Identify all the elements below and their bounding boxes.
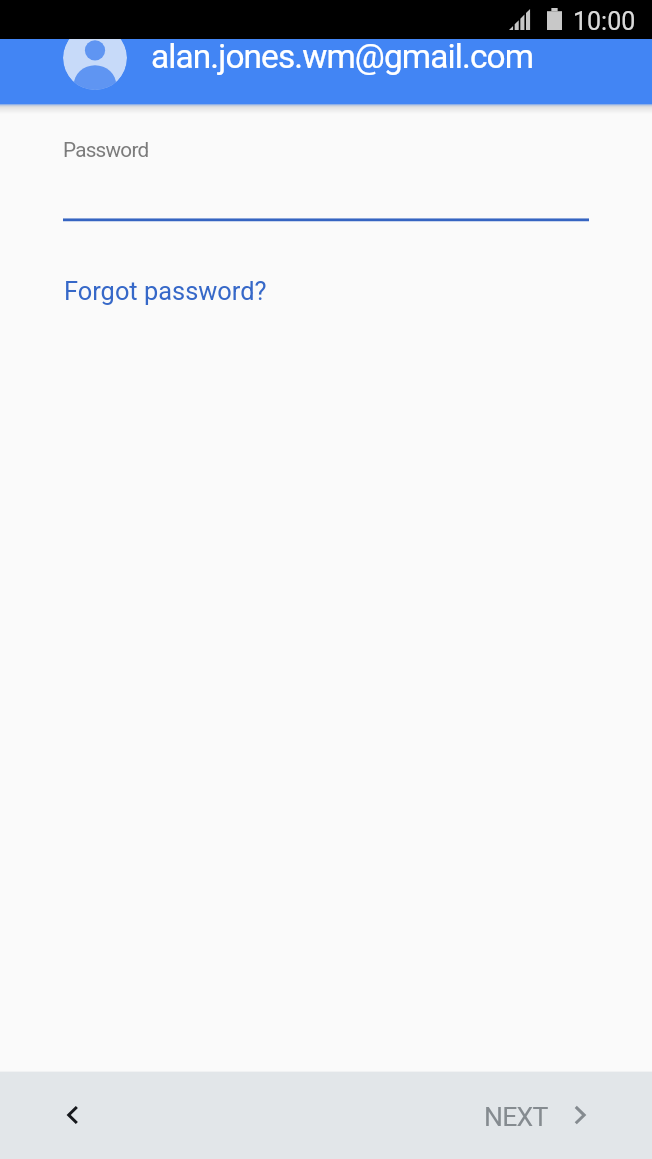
button[interactable]: Forgot password? xyxy=(62,276,265,306)
button[interactable]: Password field xyxy=(63,132,589,224)
staticText: Forgot password? xyxy=(64,276,267,306)
staticText: 10:00 xyxy=(573,7,636,36)
staticText: alan.jones.wm@gmail.com xyxy=(151,37,534,76)
button[interactable]: Account xyxy=(63,26,127,90)
button[interactable]: Back xyxy=(24,1091,124,1139)
staticText: Password xyxy=(63,138,149,162)
staticText: NEXT xyxy=(484,1101,548,1132)
button[interactable]: NEXT xyxy=(466,1085,606,1145)
